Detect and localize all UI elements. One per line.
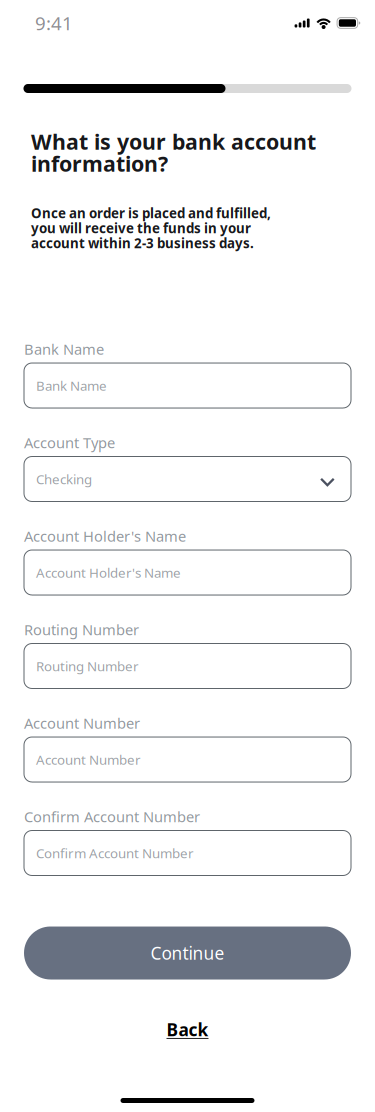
staticText: Bank Name xyxy=(24,339,104,359)
button[interactable]: Confirm Account Number xyxy=(24,830,351,875)
staticText: 9:41 xyxy=(35,11,73,35)
staticText: Confirm Account Number xyxy=(36,844,194,862)
staticText: Checking xyxy=(36,470,92,488)
button[interactable]: Account Holder's Name xyxy=(24,550,351,595)
staticText: Account Holder's Name xyxy=(24,526,186,546)
button[interactable]: Routing Number xyxy=(24,643,351,688)
staticText: Continue xyxy=(150,941,224,964)
staticText: Account Type xyxy=(24,433,115,452)
button[interactable]: Back xyxy=(156,1019,218,1039)
button[interactable]: Bank Name xyxy=(24,363,351,408)
staticText: Once an order is placed and fulfilled, xyxy=(31,204,271,222)
staticText: you will receive the funds in your xyxy=(31,219,251,237)
staticText: Confirm Account Number xyxy=(24,807,200,826)
staticText: information? xyxy=(31,149,168,178)
staticText: Account Number xyxy=(36,751,141,768)
staticText: Back xyxy=(166,1018,208,1041)
staticText: Routing Number xyxy=(36,657,139,675)
staticText: Routing Number xyxy=(24,620,139,639)
staticText: Account Number xyxy=(24,713,140,733)
staticText: What is your bank account xyxy=(31,127,316,156)
button[interactable]: Continue xyxy=(24,926,351,979)
staticText: account within 2-3 business days. xyxy=(31,234,254,252)
button[interactable]: Checking xyxy=(24,456,351,501)
staticText: Bank Name xyxy=(36,377,107,394)
button[interactable]: Account Number xyxy=(24,737,351,782)
staticText: Account Holder's Name xyxy=(36,564,181,581)
